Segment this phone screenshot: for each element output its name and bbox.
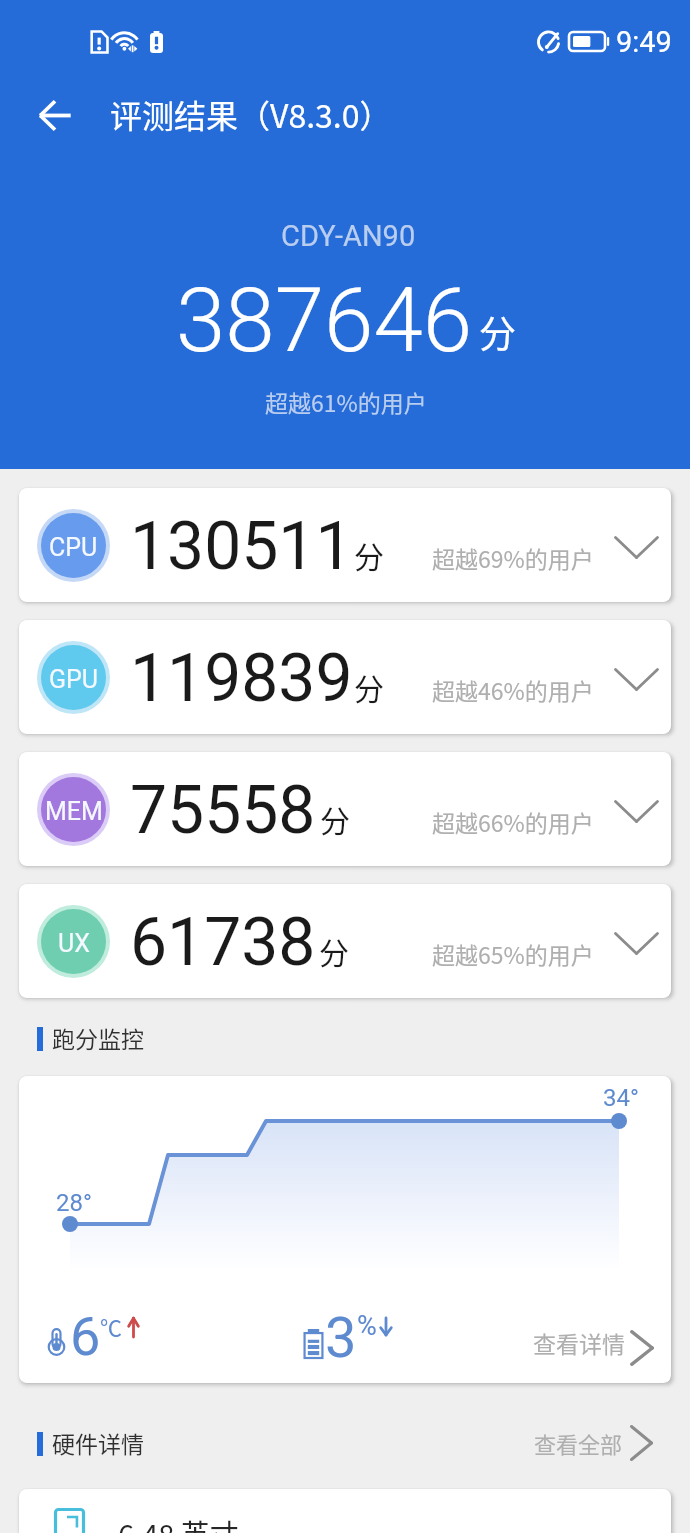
staticText: 119839 bbox=[130, 640, 353, 717]
staticText: 超越61%的用户 bbox=[265, 385, 427, 418]
staticText: CDY-AN90 bbox=[281, 219, 416, 253]
staticText: 超越65%的用户 bbox=[432, 937, 594, 970]
button[interactable]: MEM bbox=[19, 752, 671, 866]
staticText: % bbox=[357, 1310, 377, 1342]
staticText: 34° bbox=[603, 1084, 639, 1112]
staticText: 3 bbox=[325, 1305, 357, 1371]
button[interactable]: 查看详情 bbox=[533, 1316, 654, 1368]
staticText: 分 bbox=[354, 533, 384, 576]
staticText: 61738 bbox=[130, 904, 316, 981]
staticText: 9:49 bbox=[616, 25, 672, 59]
staticText: 6 bbox=[70, 1305, 101, 1368]
staticText: CPU bbox=[49, 533, 98, 562]
staticText: 分 bbox=[320, 797, 350, 840]
staticText: 分 bbox=[354, 665, 384, 708]
staticText: 超越66%的用户 bbox=[432, 805, 594, 838]
staticText: 评测结果（V8.3.0） bbox=[110, 91, 392, 137]
staticText: 130511 bbox=[130, 508, 353, 585]
staticText: 28° bbox=[56, 1189, 92, 1217]
staticText: 6.48 英寸 bbox=[118, 1512, 239, 1533]
staticText: 分 bbox=[479, 305, 516, 359]
staticText: GPU bbox=[49, 665, 99, 694]
staticText: 跑分监控 bbox=[52, 1021, 144, 1054]
button[interactable]: Back bbox=[27, 88, 82, 143]
staticText: 超越46%的用户 bbox=[432, 673, 594, 706]
staticText: ℃ bbox=[100, 1310, 123, 1342]
button[interactable]: 6.48 英寸 bbox=[19, 1489, 671, 1533]
staticText: 分 bbox=[319, 929, 349, 972]
staticText: 387646 bbox=[176, 268, 473, 372]
staticText: MEM bbox=[45, 797, 103, 826]
button[interactable]: GPU bbox=[19, 620, 671, 734]
staticText: 超越69%的用户 bbox=[432, 541, 594, 574]
staticText: 查看全部 bbox=[534, 1427, 623, 1459]
staticText: 查看详情 bbox=[533, 1326, 625, 1359]
button[interactable]: 查看全部 bbox=[534, 1422, 653, 1464]
staticText: UX bbox=[58, 929, 90, 958]
button[interactable]: CPU bbox=[19, 488, 671, 602]
staticText: 硬件详情 bbox=[52, 1426, 144, 1459]
button[interactable]: UX bbox=[19, 884, 671, 998]
staticText: 75558 bbox=[130, 772, 316, 849]
